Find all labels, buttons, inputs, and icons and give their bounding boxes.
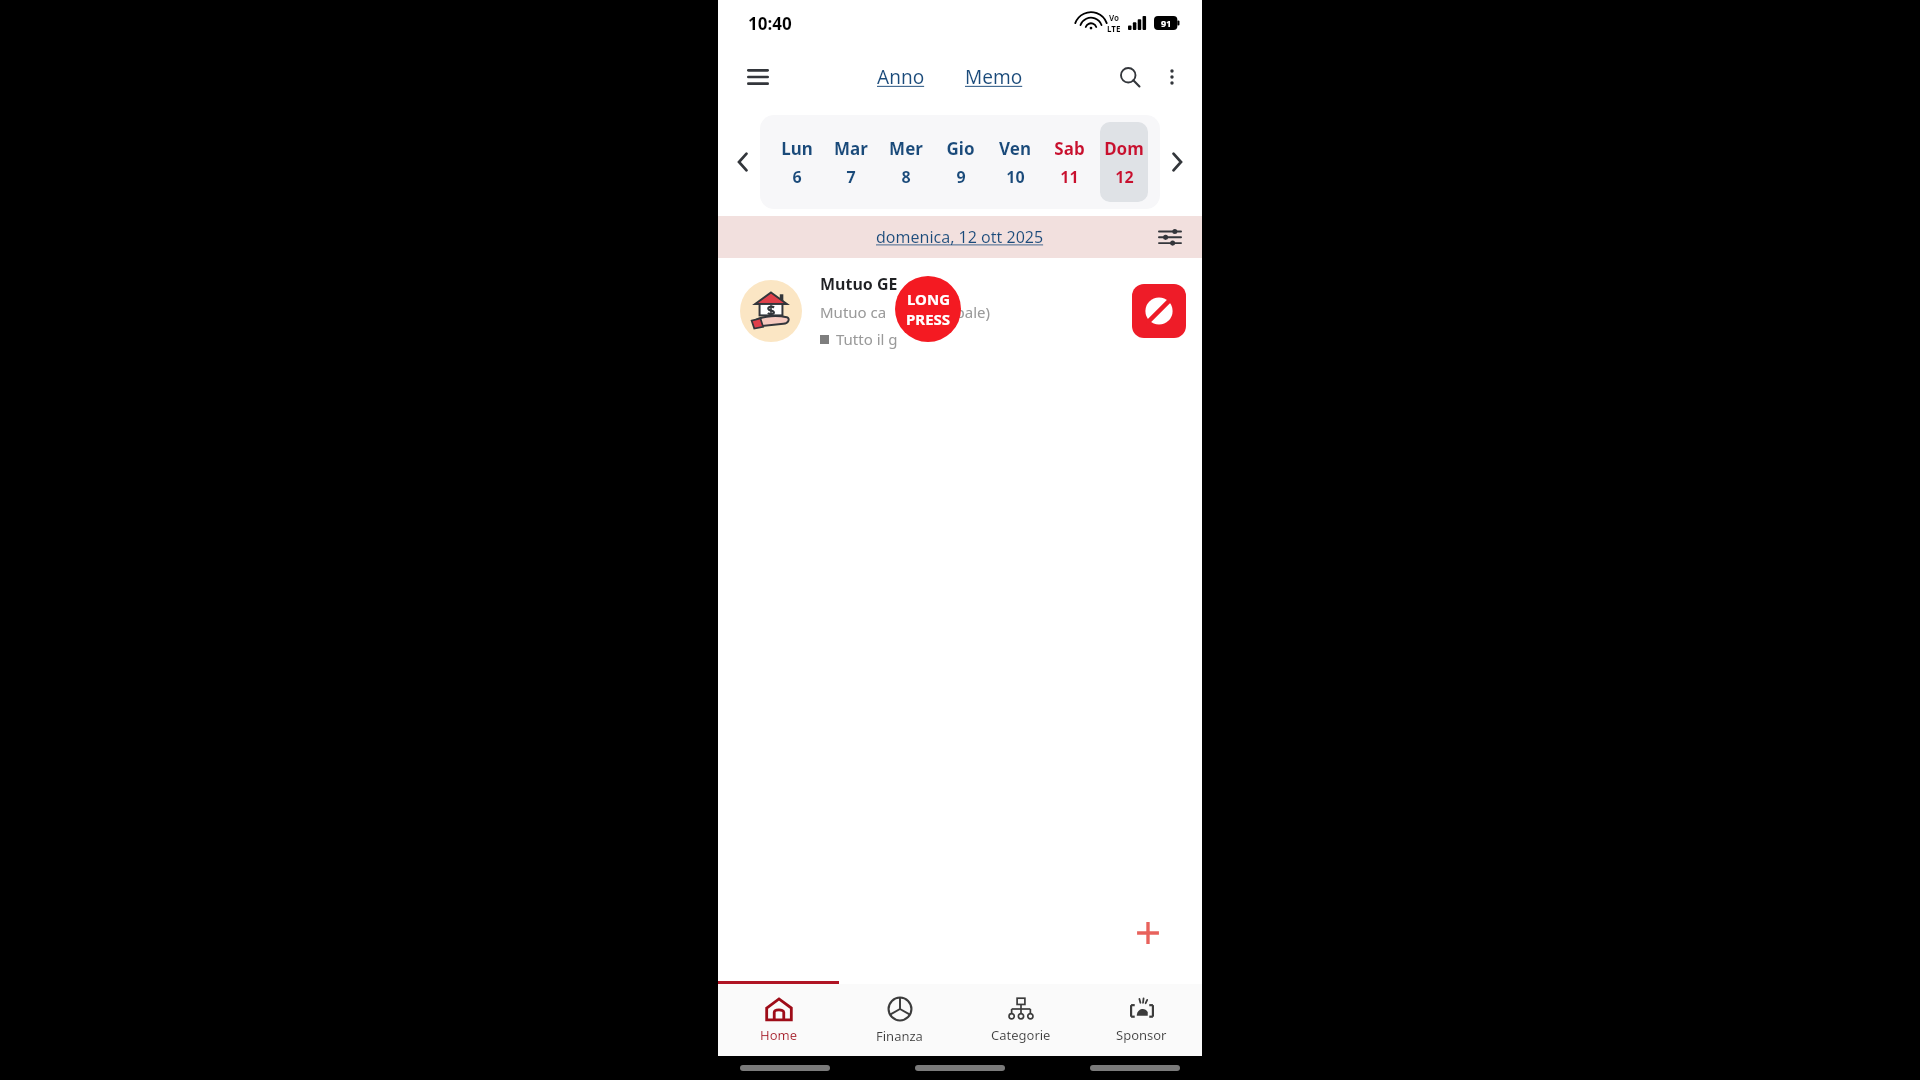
button[interactable]: More options [1152,57,1192,97]
staticText: 91 [1161,17,1172,29]
button[interactable]: Ven [991,122,1039,202]
staticText: 6 [792,166,802,188]
staticText: 9 [956,166,966,188]
button[interactable]: LONG [895,276,961,342]
staticText: Memo [965,64,1023,90]
staticText: Sponsor [1116,1026,1167,1044]
button[interactable]: Blocca [1132,284,1186,338]
staticText: Lun [781,137,813,160]
button[interactable]: Finanza [839,984,960,1056]
button[interactable]: Sab [1045,122,1093,202]
staticText: Tutto il g [836,329,898,349]
button[interactable]: domenica, 12 ott 2025 [872,222,1048,252]
button[interactable]: Search [1108,55,1152,99]
button[interactable]: Dom [1100,122,1148,202]
staticText: 7 [846,166,856,188]
button[interactable]: Filter [1152,219,1188,255]
button[interactable]: Sponsor [1081,984,1202,1056]
staticText: LONG [907,289,951,309]
staticText: Dom [1104,137,1144,160]
button[interactable]: Categorie [960,984,1081,1056]
staticText: Categorie [991,1026,1051,1044]
staticText: Finanza [876,1027,923,1045]
button[interactable]: Home [718,984,839,1056]
button[interactable]: Mar [827,122,875,202]
button[interactable]: Anno [873,58,929,96]
staticText: LTE [1107,23,1121,34]
staticText: Mutuo ca rincipale) [820,302,991,322]
staticText: PRESS [906,309,951,329]
staticText: Gio [946,137,975,160]
button[interactable]: Next week [1160,145,1194,179]
staticText: Ven [999,137,1031,160]
button[interactable]: Memo [961,58,1027,96]
staticText: Mutuo GE [820,273,898,295]
button[interactable]: Previous week [726,145,760,179]
button[interactable]: Mer [882,122,930,202]
button[interactable]: Gio [936,122,984,202]
staticText: 12 [1115,166,1134,188]
staticText: 10 [1006,166,1025,188]
staticText: 8 [901,166,911,188]
button[interactable]: Aggiungi [1120,905,1176,961]
staticText: Anno [877,64,925,90]
staticText: Vo [1109,12,1120,23]
staticText: 11 [1060,166,1079,188]
button[interactable]: Lun [773,122,821,202]
staticText: domenica, 12 ott 2025 [876,226,1044,248]
staticText: Sab [1054,137,1085,160]
staticText: Mer [889,137,923,160]
staticText: 10:40 [748,12,792,35]
button[interactable]: Menu [736,55,780,99]
staticText: Home [760,1026,797,1044]
staticText: Mar [834,137,868,160]
